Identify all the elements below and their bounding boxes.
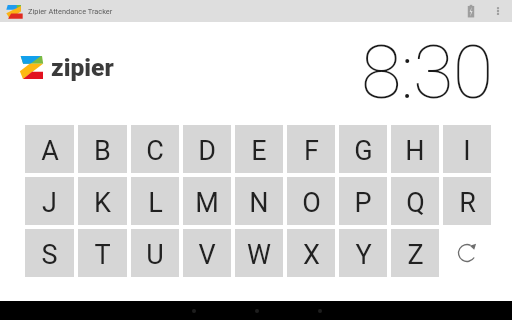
button[interactable]: U (131, 229, 179, 277)
button[interactable]: M (183, 177, 231, 225)
button[interactable]: H (391, 125, 439, 173)
button[interactable]: L (131, 177, 179, 225)
staticText: F (304, 135, 319, 167)
staticText: G (354, 135, 373, 167)
button[interactable]: R (443, 177, 491, 225)
button[interactable]: G (339, 125, 387, 173)
staticText: E (251, 135, 267, 167)
button[interactable]: P (339, 177, 387, 225)
staticText: 8:30 (361, 29, 493, 116)
staticText: C (146, 135, 164, 167)
staticText: Zipier Attendance Tracker (28, 7, 113, 16)
button[interactable]: Refresh (443, 229, 491, 277)
staticText: Y (355, 239, 372, 271)
button[interactable]: A (25, 125, 74, 173)
button[interactable]: I (443, 125, 491, 173)
button[interactable]: X (287, 229, 335, 277)
staticText: A (41, 135, 59, 167)
staticText: W (247, 239, 271, 271)
button[interactable]: Z (391, 229, 439, 277)
staticText: K (94, 187, 111, 219)
staticText: M (195, 187, 219, 219)
staticText: L (148, 187, 163, 219)
staticText: X (303, 239, 320, 271)
staticText: B (94, 135, 111, 167)
staticText: Q (406, 187, 425, 219)
button[interactable]: E (235, 125, 283, 173)
staticText: V (198, 239, 216, 271)
button[interactable]: More options (492, 5, 504, 17)
staticText: zipier (51, 53, 114, 82)
staticText: O (302, 187, 321, 219)
button[interactable]: Home (247, 301, 266, 320)
button[interactable]: W (235, 229, 283, 277)
staticText: R (459, 187, 476, 219)
button[interactable]: C (131, 125, 179, 173)
staticText: U (146, 239, 164, 271)
button[interactable]: K (78, 177, 127, 225)
staticText: Z (407, 239, 424, 271)
button[interactable]: S (25, 229, 74, 277)
button[interactable]: T (78, 229, 127, 277)
staticText: D (198, 135, 216, 167)
staticText: I (463, 135, 471, 167)
button[interactable]: O (287, 177, 335, 225)
button[interactable]: Y (339, 229, 387, 277)
button[interactable]: Back (184, 301, 203, 320)
staticText: H (405, 135, 425, 167)
staticText: P (354, 187, 372, 219)
button[interactable]: B (78, 125, 127, 173)
staticText: N (249, 187, 269, 219)
button[interactable]: F (287, 125, 335, 173)
staticText: J (42, 187, 57, 219)
button[interactable]: V (183, 229, 231, 277)
staticText: T (94, 239, 111, 271)
button[interactable]: Q (391, 177, 439, 225)
button[interactable]: D (183, 125, 231, 173)
button[interactable]: J (25, 177, 74, 225)
staticText: S (41, 239, 58, 271)
button[interactable]: N (235, 177, 283, 225)
button[interactable]: Recents (310, 301, 329, 320)
